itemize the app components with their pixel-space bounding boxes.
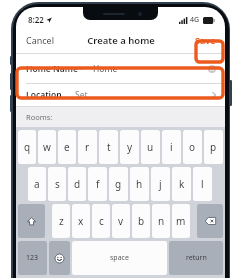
staticText: o [189,140,196,154]
button[interactable]: o [183,130,202,164]
button[interactable]: h [130,167,149,201]
button[interactable]: p [204,130,223,164]
button[interactable]: c [92,204,110,238]
staticText: i [170,140,173,154]
button[interactable]: z [52,204,70,238]
staticText: n [158,214,165,228]
staticText: l [201,177,204,191]
button[interactable]: e [58,130,76,164]
button[interactable]: x [72,204,90,238]
button[interactable]: Shift [18,204,45,238]
button[interactable]: m [172,204,190,238]
staticText: Home [93,63,118,75]
button[interactable]: b [132,204,150,238]
staticText: w [43,140,51,154]
staticText: h [136,177,143,191]
button[interactable]: return [169,241,223,275]
other: Clear text [208,65,216,73]
button[interactable]: r [78,130,97,164]
staticText: f [96,177,100,191]
staticText: x [78,214,84,228]
button[interactable]: u [141,130,160,164]
staticText: 8:22 [28,14,44,25]
button[interactable]: q [18,130,36,164]
button[interactable]: Cancel [16,29,63,51]
staticText: u [147,140,154,154]
button[interactable]: Save [187,29,225,51]
staticText: d [74,177,81,191]
staticText: e [64,140,70,154]
staticText: Cancel [26,34,55,46]
button[interactable]: j [151,167,170,201]
staticText: q [24,140,31,154]
staticText: Location [26,89,62,101]
button[interactable]: t [99,130,118,164]
staticText: Create a home [87,34,155,47]
staticText: a [34,177,40,191]
staticText: Set [75,89,88,101]
staticText: r [85,140,90,154]
staticText: 4G [190,15,200,25]
staticText: y [127,140,133,154]
staticText: Home Name [26,63,78,75]
button[interactable]: v [112,204,130,238]
staticText: return [186,253,207,263]
button[interactable]: g [109,167,128,201]
button[interactable]: space [72,241,167,275]
button[interactable]: f [88,167,107,201]
staticText: t [107,140,111,154]
button[interactable]: Emoji [49,241,70,275]
staticText: j [159,177,162,191]
button[interactable]: s [48,167,66,201]
button[interactable]: i [162,130,181,164]
staticText: g [115,177,122,191]
staticText: v [118,214,124,228]
button[interactable]: Backspace [197,204,223,238]
button[interactable]: Location [16,84,225,106]
button[interactable]: n [152,204,170,238]
staticText: c [99,214,104,228]
staticText: b [138,214,145,228]
staticText: Save [195,34,216,46]
staticText: space [110,253,129,263]
button[interactable]: 123 [18,241,47,275]
staticText: Rooms: [26,112,53,122]
button[interactable]: d [68,167,86,201]
button[interactable]: w [38,130,56,164]
button[interactable]: l [193,167,212,201]
staticText: z [59,214,64,228]
staticText: k [179,177,185,191]
button[interactable]: Home Name [16,54,225,83]
button[interactable]: k [172,167,191,201]
staticText: s [55,177,60,191]
button[interactable]: a [28,167,46,201]
staticText: p [210,140,217,154]
staticText: 123 [26,253,39,263]
staticText: m [176,214,186,228]
button[interactable]: y [120,130,139,164]
